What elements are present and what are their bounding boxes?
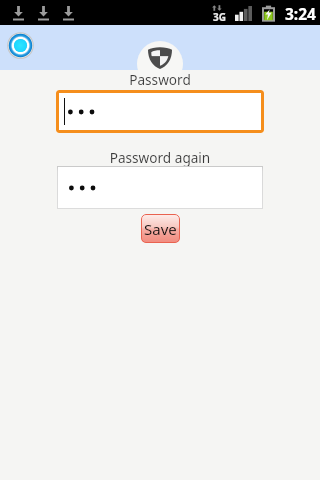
staticText: 3G [213, 10, 226, 24]
button[interactable]: App icon [7, 32, 34, 59]
staticText: 3:24 [285, 3, 316, 24]
staticText: Save [144, 219, 177, 239]
staticText: Password again [0, 148, 320, 167]
button[interactable] [58, 167, 262, 208]
button[interactable]: Save [141, 214, 180, 243]
staticText: Password [0, 70, 320, 89]
button[interactable] [56, 90, 264, 133]
